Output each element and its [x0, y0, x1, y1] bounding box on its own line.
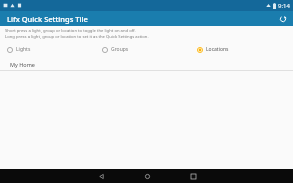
staticText: Lifx Quick Settings Tile: [7, 14, 88, 24]
button[interactable]: Home: [132, 169, 162, 183]
staticText: Short press a light, group or location t…: [5, 28, 136, 34]
staticText: My Home: [10, 61, 35, 68]
staticText: 9:14: [278, 2, 290, 10]
staticText: Locations: [206, 46, 229, 53]
button[interactable]: Recent apps: [178, 169, 208, 183]
button[interactable]: My Home: [0, 59, 293, 70]
staticText: Groups: [111, 46, 129, 53]
button[interactable]: Refresh: [276, 12, 289, 25]
button[interactable]: Back: [86, 169, 116, 183]
staticText: Long press a light, group or location to…: [5, 34, 149, 40]
button[interactable]: Locations: [194, 44, 289, 55]
button[interactable]: Groups: [99, 44, 194, 55]
button[interactable]: Lights: [4, 44, 99, 55]
staticText: Lights: [16, 46, 31, 53]
